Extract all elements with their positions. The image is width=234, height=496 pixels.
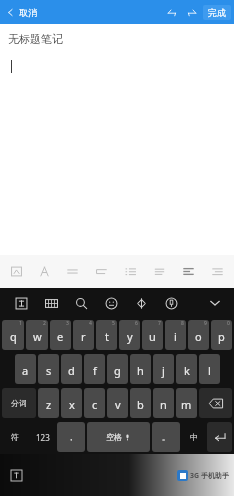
button[interactable]: a [15,354,36,384]
button[interactable]: Bulleted list [145,255,174,288]
button[interactable]: 2 [26,320,48,350]
staticText: 完成 [208,7,226,18]
button[interactable]: Hide keyboard [204,292,226,314]
button[interactable]: Emoji [96,288,126,318]
button[interactable]: l [199,354,220,384]
button[interactable]: s [38,354,59,384]
button[interactable]: Indent [87,255,116,288]
staticText: e [57,329,64,344]
staticText: g [114,363,121,378]
staticText: o [195,329,202,344]
staticText: f [93,363,97,378]
staticText: 8 [181,320,184,327]
staticText: 7 [158,320,161,327]
staticText: m [181,397,192,412]
button[interactable]: Theme [126,288,156,318]
staticText: 3G 手机助手 [190,471,229,481]
staticText: 取消 [19,7,37,18]
button[interactable]: m [176,388,197,418]
button[interactable]: 符 [2,422,28,452]
button[interactable]: Input method [6,288,36,318]
staticText: 3 [66,320,69,327]
button[interactable]: Align center [174,255,203,288]
staticText: 无标题笔记 [8,32,63,46]
button[interactable]: Insert image [2,255,30,288]
button[interactable]: ， [57,422,85,452]
staticText: b [137,397,144,412]
staticText: ， [67,432,75,442]
button[interactable]: Voice [156,288,186,318]
staticText: y [127,329,133,344]
staticText: 。 [162,432,170,442]
button[interactable]: h [130,354,151,384]
button[interactable]: z [38,388,59,418]
button[interactable]: f [84,354,105,384]
staticText: p [218,329,225,344]
staticText: r [81,329,86,344]
staticText: q [10,329,17,344]
button[interactable]: Keyboard layout [36,288,66,318]
button[interactable]: 中 [182,422,205,452]
staticText: x [69,397,75,412]
button[interactable]: 空格 [87,422,150,452]
staticText: l [208,363,211,378]
staticText: s [46,363,52,378]
button[interactable]: 123 [30,422,55,452]
button[interactable]: Align left [58,255,87,288]
staticText: j [162,363,165,378]
button[interactable]: k [176,354,197,384]
staticText: 分词 [11,398,27,408]
button[interactable]: 无标题笔记 [0,24,234,255]
staticText: t [105,329,109,344]
staticText: c [92,397,98,412]
staticText: 空格 [106,432,122,442]
button[interactable]: b [130,388,151,418]
staticText: w [33,329,42,344]
staticText: 2 [43,320,46,327]
button[interactable]: 分词 [2,388,36,418]
button[interactable]: 9 [188,320,209,350]
staticText: 4 [89,320,92,327]
button[interactable]: n [153,388,174,418]
button[interactable]: Recents [8,467,24,483]
staticText: 5 [112,320,115,327]
staticText: 中 [190,432,198,442]
staticText: i [174,329,177,344]
button[interactable]: 完成 [203,5,231,20]
button[interactable]: 3 [50,320,71,350]
staticText: u [149,329,156,344]
staticText: 123 [36,432,50,443]
button[interactable]: j [153,354,174,384]
button[interactable]: Numbered list [116,255,145,288]
button[interactable]: More [183,3,201,21]
button[interactable]: 。 [152,422,180,452]
button[interactable]: Backspace [199,388,232,418]
button[interactable]: 6 [119,320,140,350]
button[interactable]: 0 [211,320,232,350]
staticText: 符 [11,432,19,442]
button[interactable]: 1 [2,320,24,350]
button[interactable]: Text style [30,255,58,288]
staticText: z [46,397,52,412]
button[interactable]: 取消 [0,5,43,20]
button[interactable]: 8 [165,320,186,350]
button[interactable]: g [107,354,128,384]
button[interactable]: d [61,354,82,384]
button[interactable]: 4 [73,320,94,350]
button[interactable]: 7 [142,320,163,350]
staticText: h [137,363,144,378]
staticText: 9 [204,320,207,327]
staticText: 0 [227,320,230,327]
button[interactable]: v [107,388,128,418]
button[interactable]: Align right [203,255,232,288]
button[interactable]: x [61,388,82,418]
button[interactable]: Search [66,288,96,318]
staticText: k [184,363,190,378]
staticText: a [22,363,29,378]
button[interactable]: 5 [96,320,117,350]
staticText: d [68,363,75,378]
button[interactable]: Enter [207,422,232,452]
staticText: 6 [135,320,138,327]
button[interactable]: Undo [163,3,181,21]
button[interactable]: c [84,388,105,418]
